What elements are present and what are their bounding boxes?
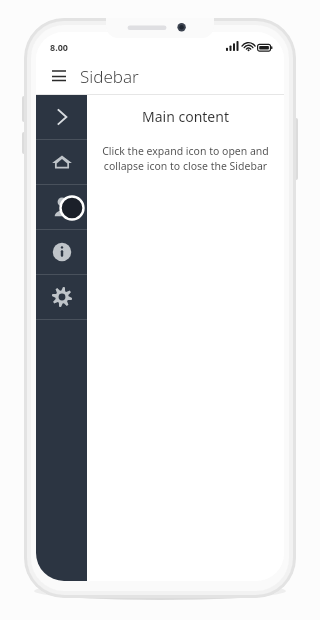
button[interactable]: Profile bbox=[36, 185, 87, 229]
staticText: Click the expand icon to open and collap… bbox=[99, 144, 272, 173]
button[interactable]: Home bbox=[36, 140, 87, 184]
button[interactable]: Menu bbox=[44, 61, 74, 91]
staticText: Sidebar bbox=[80, 65, 139, 88]
staticText: Main content bbox=[142, 107, 229, 126]
staticText: 8.00 bbox=[50, 41, 68, 53]
button[interactable]: Expand sidebar bbox=[36, 95, 87, 139]
button[interactable]: Info bbox=[36, 230, 87, 274]
button[interactable]: Settings bbox=[36, 275, 87, 319]
